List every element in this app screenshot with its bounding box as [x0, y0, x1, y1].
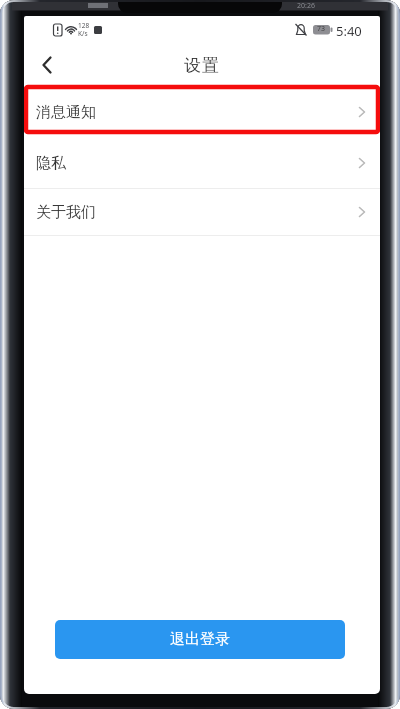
staticText: 20:26 — [297, 1, 315, 11]
staticText: 设置 — [184, 55, 220, 76]
staticText: 5:40 — [336, 22, 362, 40]
staticText: 消息通知 — [36, 103, 96, 122]
button[interactable]: 消息通知 — [24, 86, 380, 138]
staticText: 退出登录 — [170, 630, 230, 649]
button[interactable]: 隐私 — [24, 138, 380, 188]
button[interactable]: 退出登录 — [55, 620, 345, 659]
staticText: 关于我们 — [36, 203, 96, 222]
staticText: 128 K/s — [78, 21, 90, 38]
button[interactable]: 关于我们 — [24, 188, 380, 236]
staticText: 隐私 — [36, 154, 66, 173]
staticText: 73 — [317, 24, 326, 34]
button[interactable] — [30, 48, 64, 82]
